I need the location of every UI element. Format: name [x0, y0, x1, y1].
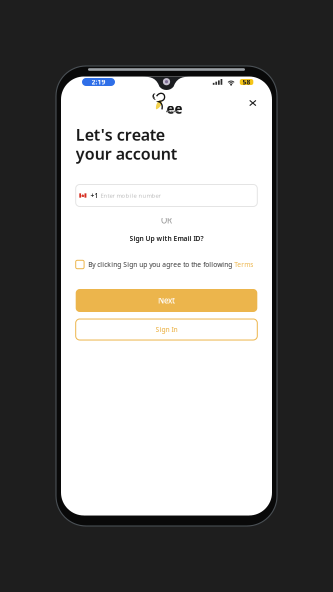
- staticText: OR: [161, 215, 172, 226]
- staticText: Let's create: [76, 124, 165, 145]
- staticText: 2:19: [91, 78, 105, 86]
- staticText: Next: [158, 295, 175, 306]
- staticText: Sign Up with Email ID?: [129, 234, 203, 243]
- button[interactable]: Sign Up with Email ID?: [76, 233, 257, 243]
- staticText: Terms: [234, 260, 253, 269]
- staticText: your account: [76, 143, 177, 164]
- button[interactable]: Next: [76, 289, 257, 312]
- button[interactable]: Agree to terms: [76, 260, 84, 269]
- staticText: +1: [90, 191, 98, 200]
- staticText: By clicking Sign up you agree to the fol…: [88, 260, 232, 269]
- button[interactable]: Sign In: [76, 319, 257, 340]
- staticText: 58: [243, 78, 251, 86]
- staticText: Enter mobile number: [100, 191, 160, 199]
- button[interactable]: Terms: [232, 260, 253, 269]
- button[interactable]: Close: [244, 94, 262, 112]
- staticText: Sign In: [155, 325, 177, 334]
- staticText: ee: [167, 100, 183, 117]
